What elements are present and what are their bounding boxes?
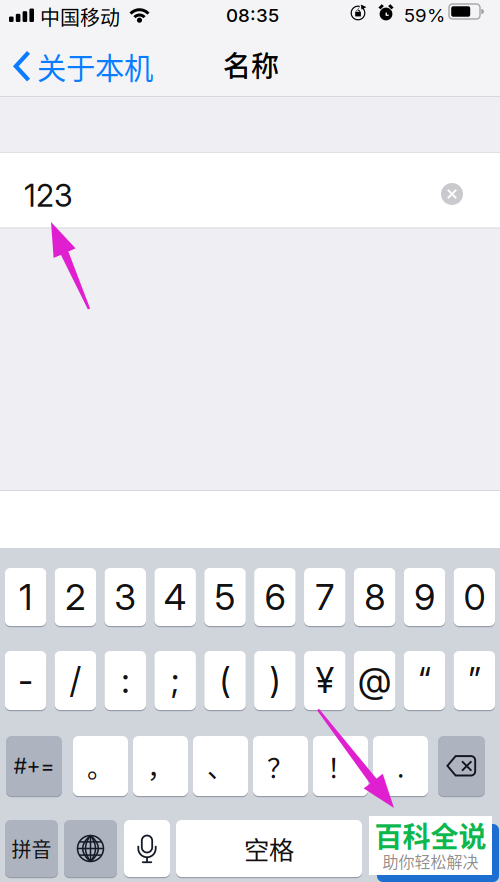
staticText: ( [219, 659, 230, 701]
button[interactable]: ¥ [304, 651, 345, 710]
staticText: 关于本机 [37, 45, 153, 87]
staticText: 助你轻松解决 [382, 849, 478, 873]
staticText: - [18, 659, 33, 701]
staticText: 。 [87, 747, 114, 785]
staticText: 8 [364, 575, 385, 619]
staticText: “ [418, 659, 431, 701]
staticText: 59% [404, 4, 445, 27]
staticText: #+= [13, 753, 54, 779]
button[interactable]: 关于本机 [0, 37, 153, 95]
staticText: 6 [264, 575, 285, 619]
button[interactable]: 6 [254, 568, 296, 626]
staticText: 9 [414, 575, 435, 619]
staticText: 3 [114, 575, 136, 619]
button[interactable]: 空格 [176, 820, 362, 877]
button[interactable]: Delete [438, 736, 485, 796]
staticText: ¥ [316, 659, 334, 701]
staticText: / [69, 659, 81, 701]
staticText: 4 [164, 575, 187, 619]
staticText: ！ [327, 747, 354, 785]
staticText: ; [171, 659, 180, 701]
staticText: 、 [207, 747, 234, 785]
staticText: 中国移动 [40, 2, 120, 31]
button[interactable]: 5 [204, 568, 246, 626]
staticText: @ [358, 659, 392, 701]
staticText: 空格 [244, 830, 294, 867]
button[interactable]: 4 [154, 568, 196, 626]
staticText: 百科全说 [374, 815, 486, 855]
staticText: 名称 [223, 44, 279, 84]
button[interactable]: 、 [193, 736, 248, 796]
button[interactable]: : [104, 651, 146, 710]
staticText: 1 [19, 575, 32, 619]
button[interactable]: Next keyboard [64, 820, 117, 877]
staticText: . [397, 747, 404, 785]
button[interactable]: ！ [313, 736, 368, 796]
button[interactable]: ， [133, 736, 188, 796]
button[interactable]: . [373, 736, 428, 796]
button[interactable]: #+= [6, 736, 62, 796]
button[interactable]: ？ [253, 736, 308, 796]
button[interactable]: Clear text [441, 183, 463, 205]
button[interactable]: Dictation [124, 820, 170, 877]
button[interactable]: ; [154, 651, 196, 710]
button[interactable]: 。 [73, 736, 128, 796]
button[interactable]: “ [404, 651, 445, 710]
staticText: 7 [315, 575, 334, 619]
staticText: 2 [65, 575, 86, 619]
button[interactable]: 1 [5, 568, 46, 626]
button[interactable]: @ [354, 651, 395, 710]
button[interactable]: 9 [404, 568, 445, 626]
staticText: : [121, 659, 129, 701]
button[interactable]: ) [254, 651, 296, 710]
button[interactable]: 拼音 [5, 820, 58, 877]
staticText: 08:35 [226, 4, 279, 27]
staticText: ) [269, 659, 280, 701]
button[interactable]: 0 [454, 568, 495, 626]
staticText: ” [468, 659, 481, 701]
staticText: 0 [463, 575, 485, 619]
staticText: 123 [24, 177, 73, 214]
staticText: ， [147, 747, 174, 785]
button[interactable]: 8 [354, 568, 395, 626]
button[interactable]: / [55, 651, 96, 710]
button[interactable]: 2 [55, 568, 96, 626]
button[interactable]: 7 [304, 568, 345, 626]
button[interactable]: ( [204, 651, 246, 710]
staticText: 5 [214, 575, 235, 619]
button[interactable]: 3 [104, 568, 146, 626]
button[interactable]: - [5, 651, 46, 710]
button[interactable]: ” [454, 651, 495, 710]
staticText: ？ [267, 747, 294, 785]
staticText: 拼音 [11, 834, 51, 863]
